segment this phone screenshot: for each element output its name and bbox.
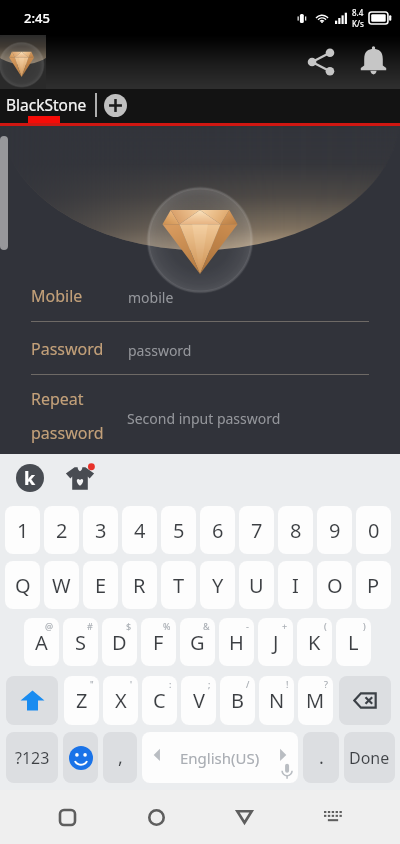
staticText: Password — [31, 338, 128, 360]
button[interactable]: Space — [142, 732, 298, 783]
staticText: G — [190, 629, 205, 656]
staticText: X — [115, 687, 127, 714]
staticText: . — [319, 745, 324, 770]
staticText: ' — [130, 678, 133, 690]
button[interactable]: B — [220, 676, 255, 725]
button[interactable]: X — [103, 676, 138, 725]
button[interactable]: 5 — [161, 506, 196, 554]
button[interactable]: Notifications — [354, 43, 392, 81]
staticText: 4 — [134, 517, 146, 544]
button[interactable]: New tab — [103, 93, 127, 117]
button[interactable]: Y — [200, 561, 235, 609]
button[interactable]: 0 — [356, 506, 391, 554]
button[interactable]: W — [44, 561, 79, 609]
button[interactable]: , — [103, 732, 137, 783]
staticText: W — [52, 572, 71, 599]
staticText: 6 — [212, 517, 224, 544]
button[interactable]: Q — [5, 561, 40, 609]
staticText: k — [24, 466, 36, 491]
staticText: password — [31, 422, 104, 444]
staticText: ) — [363, 620, 366, 632]
button[interactable]: Z — [64, 676, 99, 725]
staticText: R — [133, 572, 146, 599]
button[interactable]: E — [83, 561, 118, 609]
staticText: A — [35, 629, 48, 656]
button[interactable]: 8 — [278, 506, 313, 554]
button[interactable]: Shift — [6, 676, 58, 725]
staticText: J — [273, 629, 279, 656]
staticText: S — [75, 629, 86, 656]
staticText: U — [249, 572, 264, 599]
button[interactable]: J — [258, 618, 293, 666]
staticText: ?123 — [15, 747, 50, 769]
button[interactable]: C — [142, 676, 177, 725]
button[interactable]: 6 — [200, 506, 235, 554]
staticText: + — [282, 620, 288, 632]
button[interactable]: N — [259, 676, 294, 725]
button[interactable]: Emoji — [63, 732, 98, 783]
staticText: 1 — [17, 517, 29, 544]
staticText: $ — [126, 620, 132, 632]
staticText: @ — [45, 620, 54, 632]
staticText: 2 — [56, 517, 68, 544]
button[interactable]: Done — [344, 732, 395, 783]
staticText: Done — [349, 747, 390, 769]
staticText: Y — [212, 572, 224, 599]
staticText: 3 — [95, 517, 107, 544]
staticText: L — [348, 629, 359, 656]
button[interactable]: 3 — [83, 506, 118, 554]
button[interactable]: 4 — [122, 506, 157, 554]
staticText: 8 — [290, 517, 302, 544]
button[interactable]: I — [278, 561, 313, 609]
staticText: H — [229, 629, 244, 656]
button[interactable]: Stickers — [62, 460, 98, 496]
button[interactable]: R — [122, 561, 157, 609]
button[interactable]: 9 — [317, 506, 352, 554]
button[interactable]: Share — [302, 43, 340, 81]
staticText: O — [327, 572, 343, 599]
button[interactable]: A — [24, 618, 59, 666]
staticText: I — [292, 572, 299, 599]
button[interactable]: K — [297, 618, 332, 666]
button[interactable]: BlackStone logo — [0, 35, 46, 89]
staticText: B — [231, 687, 244, 714]
button[interactable]: P — [356, 561, 391, 609]
staticText: mobile — [128, 288, 174, 307]
staticText: T — [173, 572, 185, 599]
button[interactable]: Recents — [45, 795, 89, 839]
staticText: 7 — [251, 517, 263, 544]
button[interactable]: Keyboard settings — [12, 460, 48, 496]
button[interactable]: F — [141, 618, 176, 666]
button[interactable]: Hide keyboard — [311, 795, 355, 839]
button[interactable]: 7 — [239, 506, 274, 554]
staticText: / — [246, 678, 250, 690]
button[interactable]: ?123 — [6, 732, 58, 783]
staticText: K/s — [352, 18, 364, 29]
button[interactable]: S — [63, 618, 98, 666]
staticText: 0 — [368, 517, 380, 544]
button[interactable]: T — [161, 561, 196, 609]
button[interactable]: Backspace — [339, 676, 391, 725]
staticText: " — [90, 678, 94, 690]
staticText: # — [87, 620, 93, 632]
staticText: & — [203, 620, 210, 632]
button[interactable]: 1 — [5, 506, 40, 554]
staticText: password — [128, 341, 192, 360]
button[interactable]: BlackStone — [0, 89, 95, 120]
button[interactable]: L — [336, 618, 371, 666]
staticText: D — [112, 629, 127, 656]
button[interactable]: M — [298, 676, 333, 725]
button[interactable]: Home — [134, 795, 178, 839]
button[interactable]: V — [181, 676, 216, 725]
button[interactable]: 2 — [44, 506, 79, 554]
button[interactable]: D — [102, 618, 137, 666]
staticText: P — [367, 572, 380, 599]
staticText: ( — [324, 620, 327, 632]
staticText: Mobile — [31, 285, 128, 307]
button[interactable]: O — [317, 561, 352, 609]
button[interactable]: U — [239, 561, 274, 609]
button[interactable]: H — [219, 618, 254, 666]
button[interactable]: G — [180, 618, 215, 666]
button[interactable]: . — [303, 732, 339, 783]
button[interactable]: Back — [222, 795, 266, 839]
